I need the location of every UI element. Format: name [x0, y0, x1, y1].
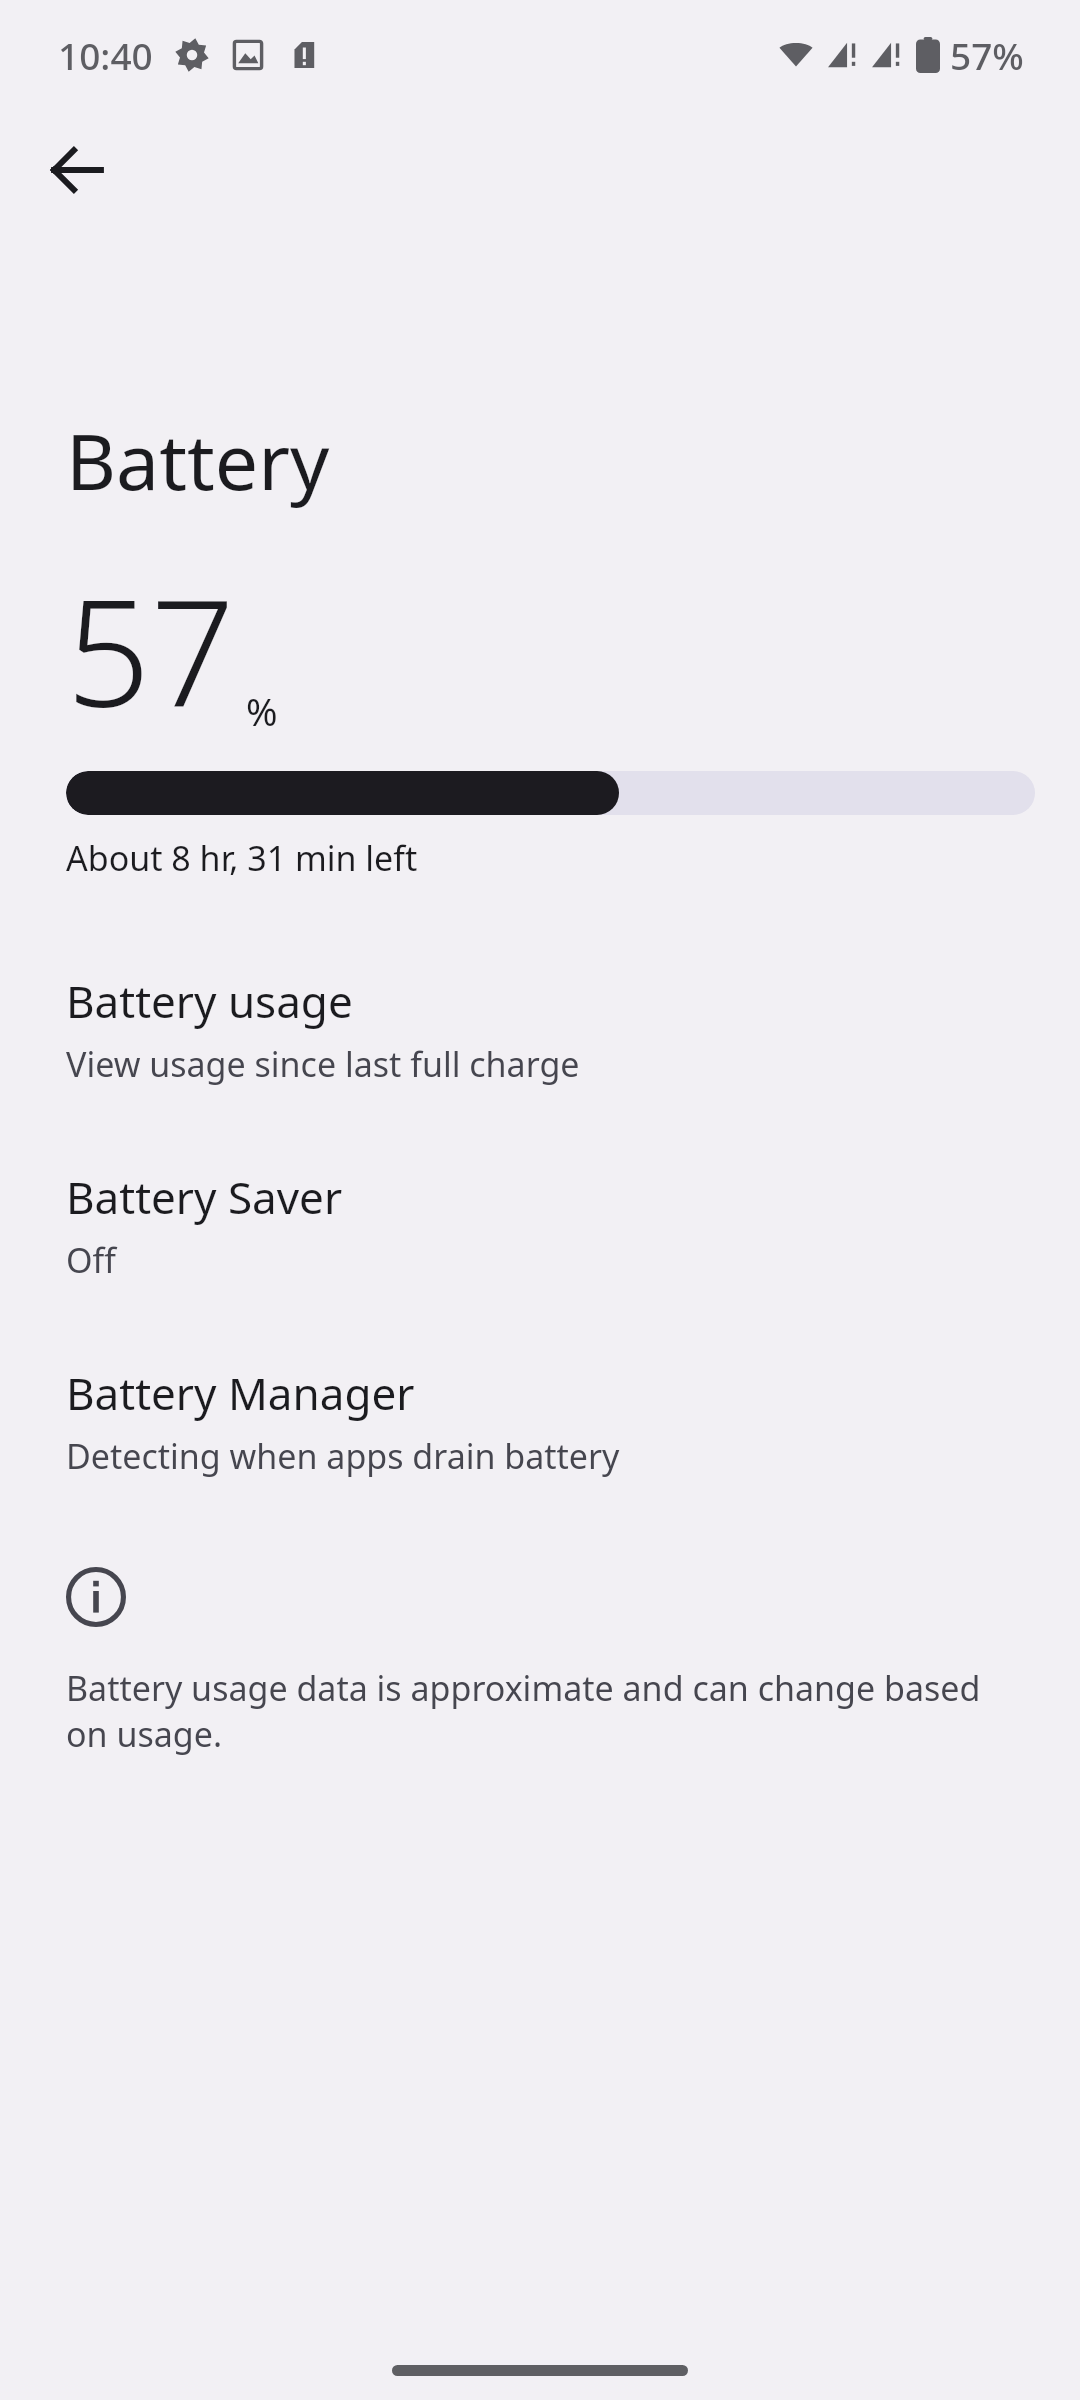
staticText: Battery Manager [66, 1363, 415, 1423]
button[interactable]: Battery Saver [0, 1163, 1080, 1287]
button[interactable]: Battery Manager [0, 1359, 1080, 1483]
staticText: Battery [66, 408, 330, 513]
button[interactable]: Battery usage [0, 967, 1080, 1091]
staticText: % [246, 685, 278, 737]
staticText: 10:40 [58, 30, 153, 80]
staticText: 57% [950, 30, 1024, 80]
button[interactable]: Back [29, 122, 125, 218]
staticText: Off [66, 1237, 116, 1283]
staticText: About 8 hr, 31 min left [66, 835, 418, 881]
staticText: 57 [66, 549, 236, 751]
staticText: Detecting when apps drain battery [66, 1433, 620, 1479]
staticText: Battery usage data is approximate and ca… [66, 1665, 1010, 1757]
staticText: Battery Saver [66, 1167, 343, 1227]
staticText: View usage since last full charge [66, 1041, 580, 1087]
staticText: Battery usage [66, 971, 353, 1031]
